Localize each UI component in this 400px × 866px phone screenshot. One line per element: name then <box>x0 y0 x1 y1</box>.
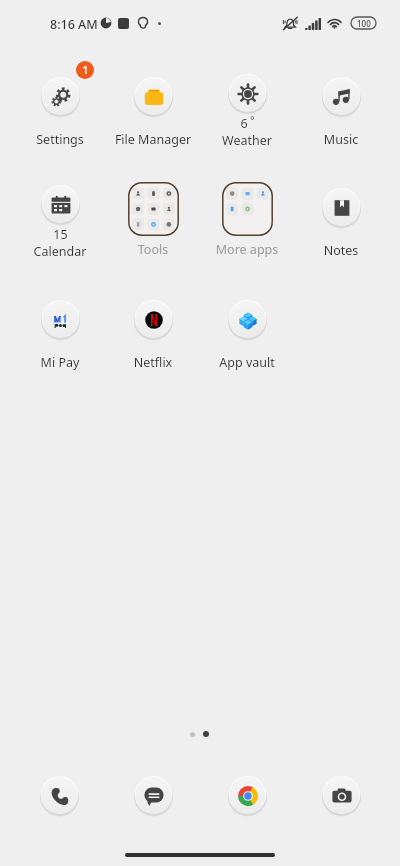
staticText: Music <box>294 131 388 148</box>
staticText: Weather <box>200 132 294 149</box>
staticText: Tools <box>106 241 200 258</box>
staticText: 8:16 AM <box>50 16 98 33</box>
staticText: Notes <box>294 242 388 259</box>
staticText: ° <box>250 113 255 127</box>
staticText: 15 <box>53 226 68 243</box>
button[interactable]: More apps <box>200 182 294 258</box>
button[interactable]: Mi Pay <box>13 300 107 371</box>
button[interactable]: Netflix <box>106 300 200 371</box>
staticText: Settings <box>13 131 107 148</box>
staticText: 100 <box>357 18 371 29</box>
button[interactable]: Messages <box>134 776 173 815</box>
staticText: More apps <box>200 241 294 258</box>
button[interactable]: File Manager <box>106 77 200 148</box>
staticText: Calendar <box>13 243 107 260</box>
staticText: 1 <box>82 62 89 78</box>
button[interactable]: Tools <box>106 182 200 258</box>
staticText: Mi Pay <box>13 354 107 371</box>
button[interactable]: Notes <box>294 188 388 259</box>
staticText: Netflix <box>106 354 200 371</box>
staticText: File Manager <box>106 131 200 148</box>
button[interactable]: Settings <box>13 77 107 148</box>
button[interactable]: Phone <box>40 776 79 815</box>
button[interactable]: App vault <box>200 300 294 371</box>
button[interactable]: 15 <box>13 185 107 260</box>
button[interactable]: Music <box>294 77 388 148</box>
staticText: 6 <box>240 115 248 132</box>
button[interactable]: Camera <box>322 776 361 815</box>
staticText: App vault <box>200 354 294 371</box>
button[interactable]: Chrome <box>228 776 267 815</box>
button[interactable]: 6 <box>200 74 294 149</box>
